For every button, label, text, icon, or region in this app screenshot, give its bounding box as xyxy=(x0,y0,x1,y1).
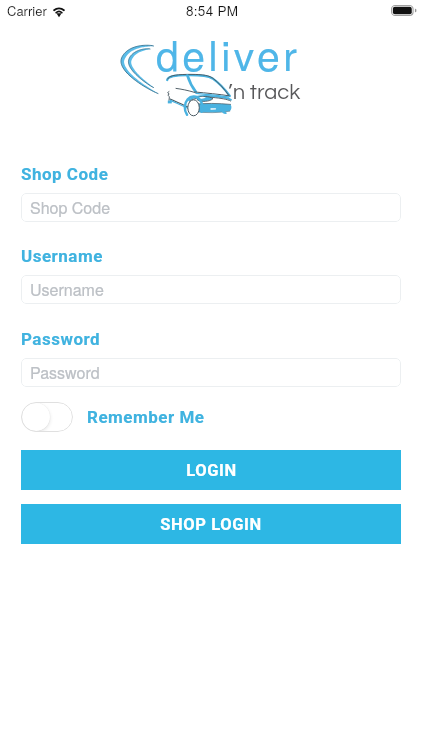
button[interactable]: Remember Me toggle xyxy=(21,402,73,432)
staticText: Password xyxy=(21,329,101,349)
button[interactable]: LOGIN xyxy=(21,450,401,490)
staticText: Shop Code xyxy=(21,164,109,184)
staticText: Password xyxy=(30,361,100,384)
staticText: LOGIN xyxy=(186,461,237,480)
button[interactable]: Username xyxy=(21,275,401,304)
staticText: Carrier xyxy=(7,1,47,20)
staticText: 8:54 PM xyxy=(186,1,239,20)
staticText: deliver xyxy=(156,24,301,83)
staticText: Username xyxy=(21,246,103,266)
staticText: Remember Me xyxy=(87,407,205,427)
button[interactable]: Shop Code xyxy=(21,193,401,222)
button[interactable]: SHOP LOGIN xyxy=(21,504,401,544)
staticText: ’n track xyxy=(228,81,301,104)
button[interactable]: Password xyxy=(21,358,401,387)
staticText: SHOP LOGIN xyxy=(160,515,262,534)
staticText: Shop Code xyxy=(30,196,111,219)
staticText: Username xyxy=(30,278,104,301)
